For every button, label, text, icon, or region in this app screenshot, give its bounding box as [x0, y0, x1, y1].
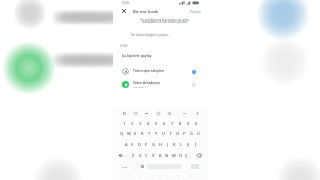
button[interactable]: O	[174, 128, 181, 139]
button[interactable]: Z	[130, 150, 137, 161]
button[interactable]: M	[170, 150, 177, 161]
button[interactable]: Clipboard	[120, 109, 128, 117]
button[interactable]: Ş	[185, 139, 192, 150]
staticText: E	[134, 131, 137, 136]
button[interactable]: Navigation item 3	[187, 172, 194, 179]
button[interactable]: Paylaş	[183, 6, 208, 16]
staticText: Z	[132, 153, 135, 158]
staticText: 6	[163, 121, 166, 126]
button[interactable]: Translate	[154, 109, 162, 117]
staticText: I	[170, 131, 172, 136]
button[interactable]: Emoji	[139, 162, 145, 171]
staticText: Paylaş	[190, 9, 201, 14]
staticText: Ö	[179, 153, 183, 158]
button[interactable]: Voice input	[193, 109, 201, 117]
staticText: İ	[195, 142, 197, 147]
button[interactable]: H	[157, 139, 164, 150]
button[interactable]: W	[125, 128, 132, 139]
button[interactable]: 0	[192, 118, 200, 129]
button[interactable]: Select option	[189, 67, 198, 76]
button[interactable]: Q	[119, 128, 125, 139]
staticText: Ç	[185, 153, 188, 158]
button[interactable]: Navigation item 0	[136, 172, 143, 179]
button[interactable]: V	[150, 150, 157, 161]
staticText: Tüm erişim talepleri	[133, 69, 165, 73]
button[interactable]: Takım Arkadaşım	[113, 78, 208, 90]
button[interactable]: Ö	[177, 150, 184, 161]
button[interactable]: 6	[160, 118, 168, 129]
button[interactable]: B	[157, 150, 164, 161]
staticText: M	[172, 153, 176, 158]
staticText: O	[176, 131, 180, 136]
staticText: Ğ	[190, 131, 193, 136]
staticText: A	[125, 142, 128, 147]
staticText: S	[131, 142, 134, 147]
button[interactable]: Y	[153, 128, 160, 139]
button[interactable]: E	[132, 128, 139, 139]
staticText: 9	[187, 121, 190, 126]
button[interactable]: X	[137, 150, 144, 161]
button[interactable]: U	[160, 128, 167, 139]
button[interactable]: 4	[144, 118, 152, 129]
staticText: .	[185, 165, 186, 169]
button[interactable]: A	[123, 139, 129, 150]
staticText: 8	[179, 121, 182, 126]
staticText: Y	[155, 131, 158, 136]
button[interactable]: F	[143, 139, 150, 150]
button[interactable]: C	[143, 150, 150, 161]
button[interactable]: 2	[128, 118, 136, 129]
button[interactable]: .	[182, 162, 188, 171]
button[interactable]: R	[139, 128, 146, 139]
button[interactable]: 5	[152, 118, 160, 129]
staticText: G	[152, 142, 155, 147]
button[interactable]: Theme	[165, 109, 173, 117]
staticText: D	[138, 142, 141, 147]
button[interactable]: Ğ	[188, 128, 195, 139]
staticText: Ü	[197, 131, 200, 136]
button[interactable]: T	[146, 128, 153, 139]
button[interactable]: 3	[136, 118, 144, 129]
staticText: 0/500	[120, 44, 128, 48]
button[interactable]: Select option	[189, 80, 198, 89]
button[interactable]: ,	[131, 162, 137, 171]
button[interactable]: J	[164, 139, 171, 150]
button[interactable]: 1	[120, 118, 128, 129]
button[interactable]: ?123	[119, 162, 130, 171]
button[interactable]: Navigation item 2	[175, 172, 182, 179]
button[interactable]: Close	[119, 6, 129, 16]
button[interactable]: K	[171, 139, 178, 150]
staticText: Ş	[187, 142, 190, 147]
button[interactable]: D	[136, 139, 143, 150]
button[interactable]: 8	[176, 118, 184, 129]
staticText: T	[148, 131, 151, 136]
button[interactable]: P	[181, 128, 188, 139]
button[interactable]: S	[129, 139, 136, 150]
button[interactable]: I	[167, 128, 174, 139]
button[interactable]: İ	[192, 139, 199, 150]
staticText: C	[145, 153, 148, 158]
button[interactable]: Ç	[183, 150, 190, 161]
staticText: Bir not ekleyerek bulunduğun yeri anlat.…	[133, 18, 197, 24]
staticText: 0	[195, 121, 198, 126]
button[interactable]: G	[150, 139, 157, 150]
staticText: W	[127, 131, 131, 136]
button[interactable]: Navigation item 1	[156, 172, 163, 179]
button[interactable]: Shift	[116, 150, 124, 161]
button[interactable]: Backspace	[195, 150, 203, 161]
staticText: Bir not bırak	[133, 9, 159, 15]
button[interactable]: Ü	[195, 128, 202, 139]
button[interactable]: 7	[168, 118, 176, 129]
staticText: H	[159, 142, 162, 147]
staticText: R	[141, 131, 144, 136]
button[interactable]: 9	[184, 118, 192, 129]
staticText: 3	[139, 121, 142, 126]
button[interactable]: GIF	[142, 109, 150, 117]
button[interactable]: Stickers	[131, 109, 139, 117]
button[interactable]: Tüm erişim talepleri	[113, 65, 208, 77]
button[interactable]: More	[180, 109, 188, 117]
button[interactable]: L	[178, 139, 185, 150]
button[interactable]: N	[163, 150, 170, 161]
staticText: 5	[155, 121, 158, 126]
